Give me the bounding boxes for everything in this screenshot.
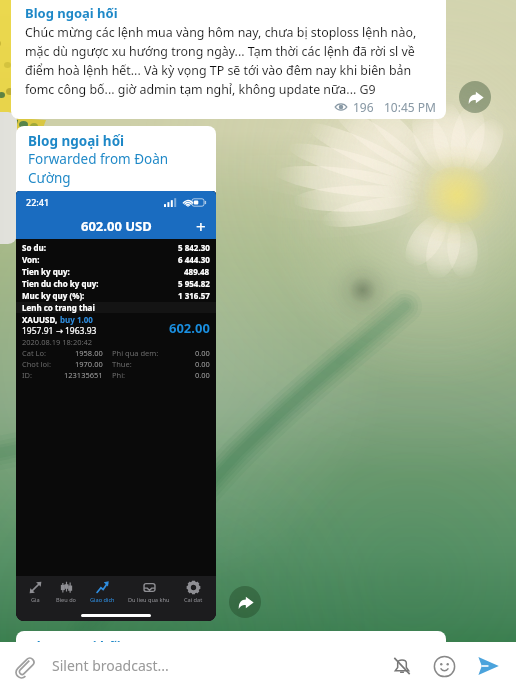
staticText: Thue: xyxy=(112,359,132,369)
staticText: Chot loi: xyxy=(22,359,51,369)
staticText: buy 1.00 xyxy=(60,314,93,325)
staticText: 123135651 xyxy=(64,370,103,380)
staticText: 196 xyxy=(353,99,374,115)
staticText: Bieu do xyxy=(56,596,76,604)
staticText: 0.00 xyxy=(195,359,210,369)
staticText: 602.00 USD xyxy=(81,217,152,235)
staticText: Lenh co trang thai xyxy=(22,302,95,313)
button[interactable]: Mute notifications xyxy=(386,650,418,682)
staticText: So du: xyxy=(22,242,46,253)
staticText: 22:41 xyxy=(26,196,50,208)
button[interactable]: Share xyxy=(459,81,491,113)
staticText: Chúc mừng các lệnh mua vàng hôm nay, chư… xyxy=(25,24,438,97)
staticText: Tien du cho ky quy: xyxy=(22,278,99,289)
staticText: Cat Lo: xyxy=(22,348,47,358)
staticText: Giao dich xyxy=(90,596,115,604)
staticText: Von: xyxy=(22,254,40,265)
staticText: Blog ngoại hối xyxy=(28,637,121,655)
staticText: 0.00 xyxy=(195,348,210,358)
staticText: Cai dat xyxy=(184,596,203,604)
button[interactable]: Du lieu qua khu xyxy=(127,581,171,604)
staticText: Phi: xyxy=(112,370,126,380)
staticText: 2020.08.19 18:20:42 xyxy=(22,337,93,347)
staticText: 5 954.82 xyxy=(178,278,210,289)
staticText: 1970.00 xyxy=(75,359,103,369)
staticText: ID: xyxy=(22,370,33,380)
staticText: 1957.91 → 1963.93 xyxy=(22,325,97,337)
staticText: 1 316.57 xyxy=(178,290,210,301)
staticText: Blog ngoại hối xyxy=(28,132,125,150)
staticText: Gia xyxy=(31,596,40,604)
button[interactable]: Giao dich xyxy=(89,581,116,604)
staticText: Phi qua dem: xyxy=(112,348,159,358)
staticText: Blog ngoại hối xyxy=(25,4,118,22)
staticText: 602.00 xyxy=(169,319,210,337)
button[interactable]: Emoji xyxy=(428,650,460,682)
button[interactable]: Send xyxy=(472,650,504,682)
staticText: 5 842.30 xyxy=(178,242,210,253)
button[interactable]: Gia xyxy=(28,581,43,604)
button[interactable]: Blog ngoại hối xyxy=(16,631,446,661)
staticText: 0.00 xyxy=(195,370,210,380)
button[interactable]: Bieu do xyxy=(55,581,77,604)
staticText: Forwarded from Đoàn Cường xyxy=(28,150,178,186)
button[interactable]: Cai dat xyxy=(183,581,204,604)
staticText: Muc ky quy (%): xyxy=(22,290,85,301)
staticText: 6 444.30 xyxy=(178,254,210,265)
staticText: 1958.00 xyxy=(75,348,103,358)
staticText: 489.48 xyxy=(184,266,210,277)
button[interactable]: Silent broadcast... xyxy=(52,656,386,675)
button[interactable]: Share xyxy=(229,586,261,618)
staticText: XAUUSD, xyxy=(22,314,60,325)
button[interactable]: Blog ngoại hối xyxy=(16,126,216,621)
staticText: Tien ky quy: xyxy=(22,266,70,277)
staticText: Du lieu qua khu xyxy=(128,596,170,604)
staticText: 10:45 PM xyxy=(384,99,436,115)
staticText: + xyxy=(196,215,206,238)
button[interactable]: Blog ngoại hối xyxy=(11,0,446,119)
button[interactable]: Attach xyxy=(10,652,38,680)
